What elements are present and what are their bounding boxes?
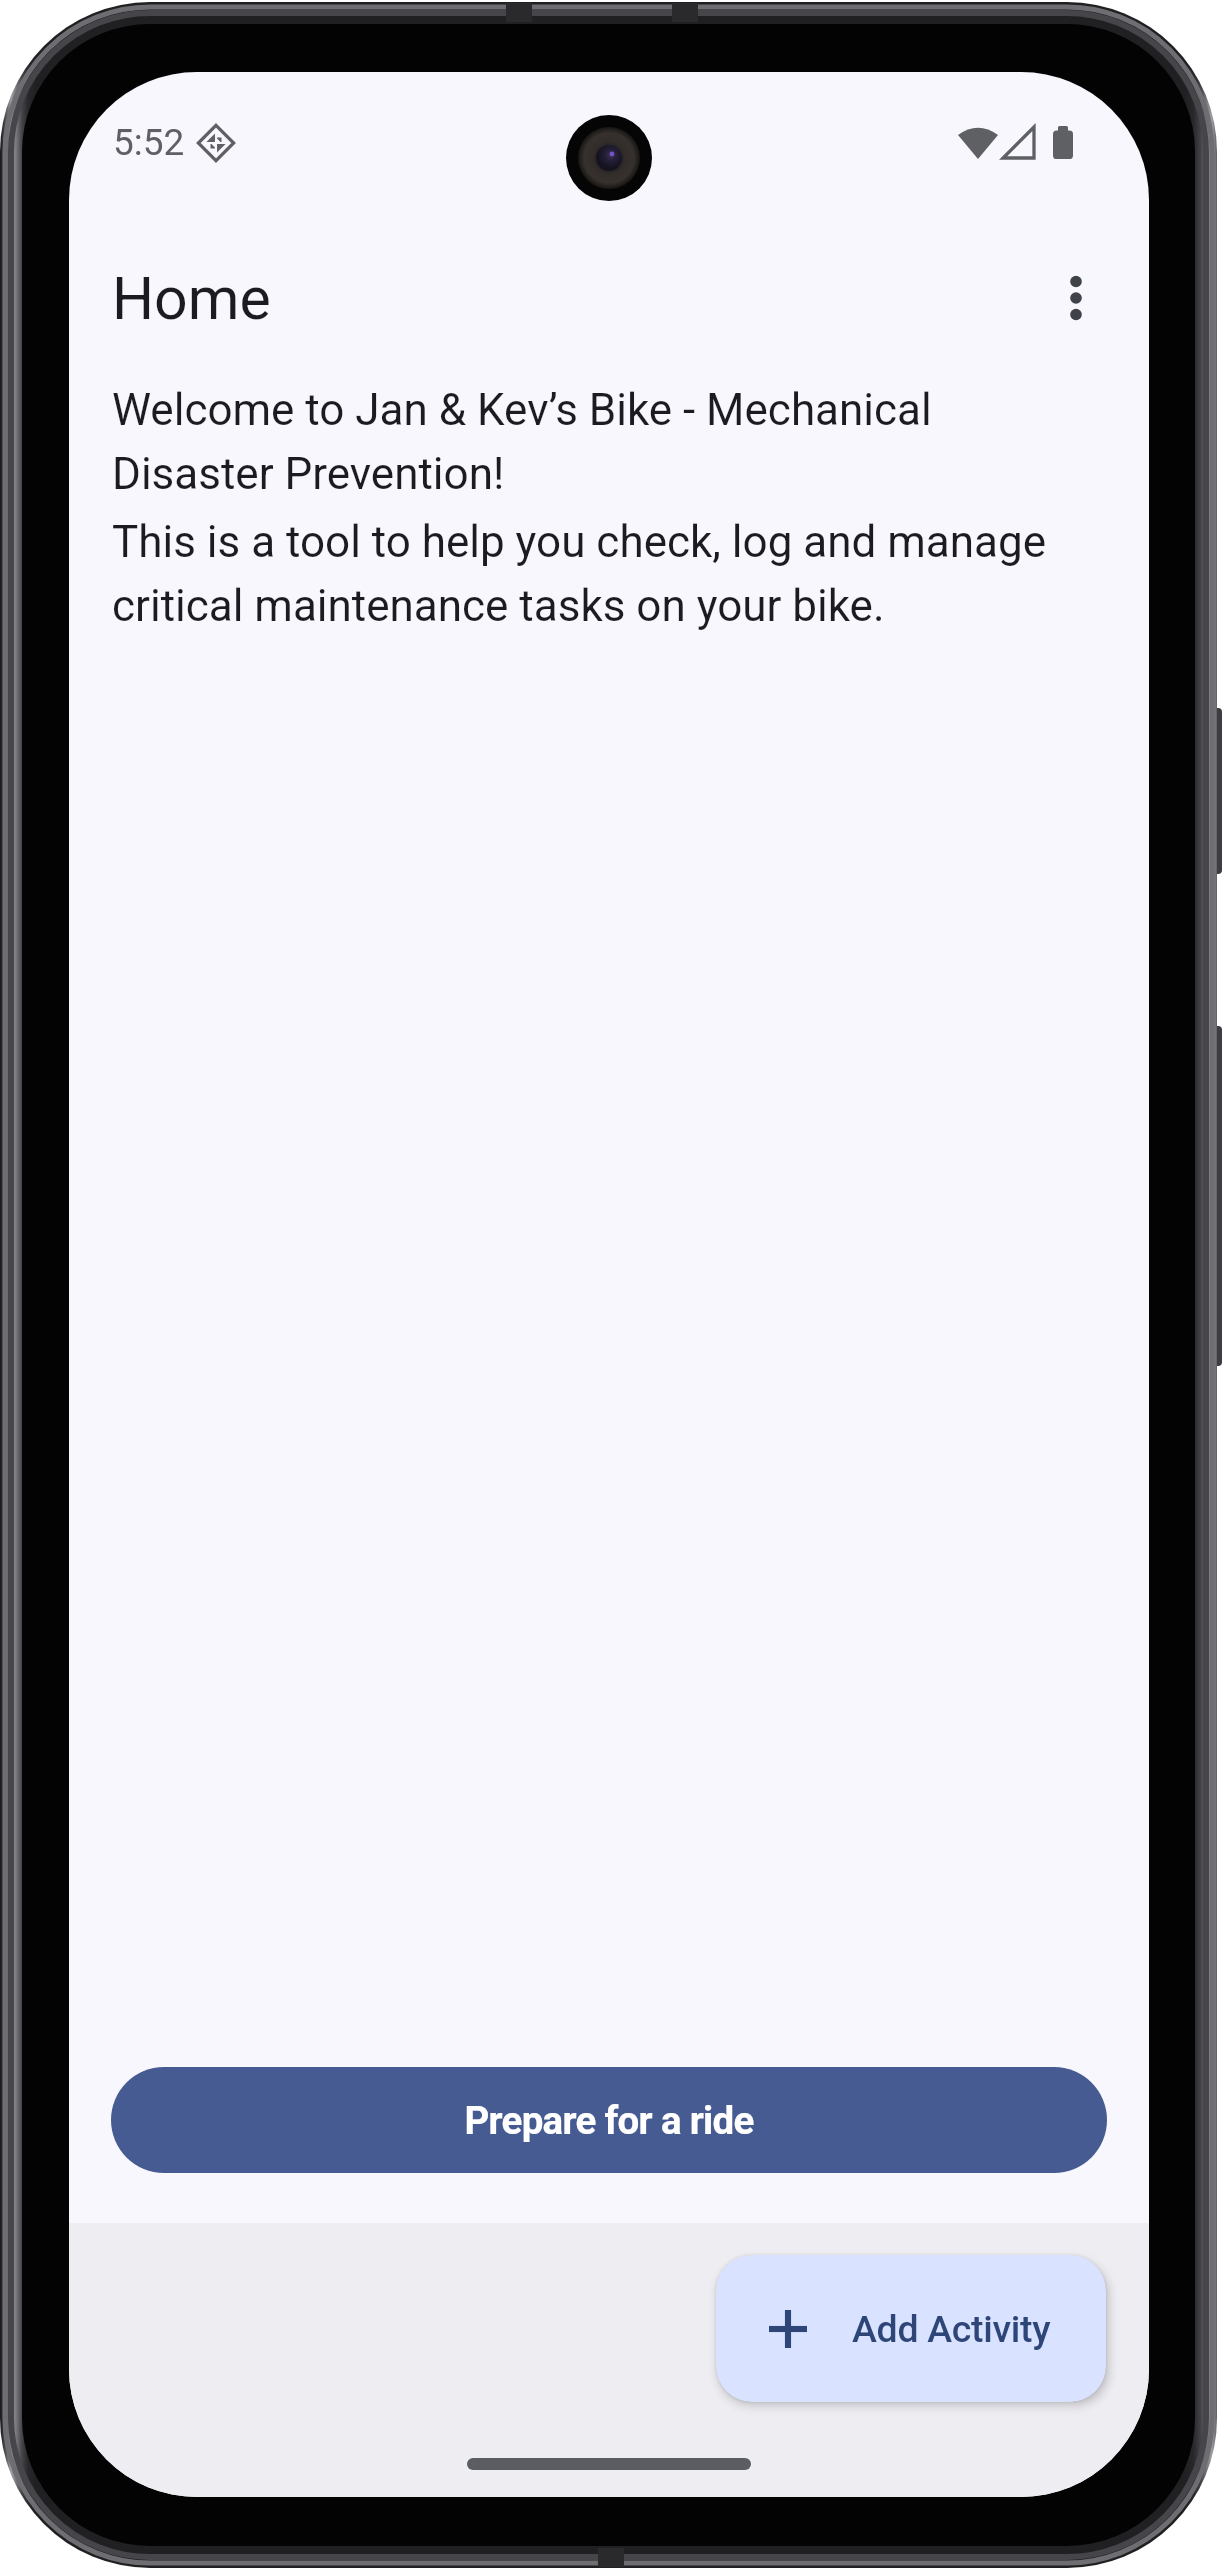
button[interactable]: Prepare for a ride xyxy=(111,2067,1107,2173)
button[interactable]: More options xyxy=(1028,250,1124,346)
staticText: 5:52 xyxy=(113,121,185,164)
staticText: Prepare for a ride xyxy=(464,2098,754,2143)
staticText: Home xyxy=(112,264,271,333)
staticText: Add Activity xyxy=(852,2307,1051,2351)
button[interactable]: Add Activity xyxy=(716,2255,1106,2402)
staticText: This is a tool to help you check, log an… xyxy=(112,516,1103,631)
staticText: Welcome to Jan & Kev’s Bike - Mechanical… xyxy=(112,384,1103,499)
